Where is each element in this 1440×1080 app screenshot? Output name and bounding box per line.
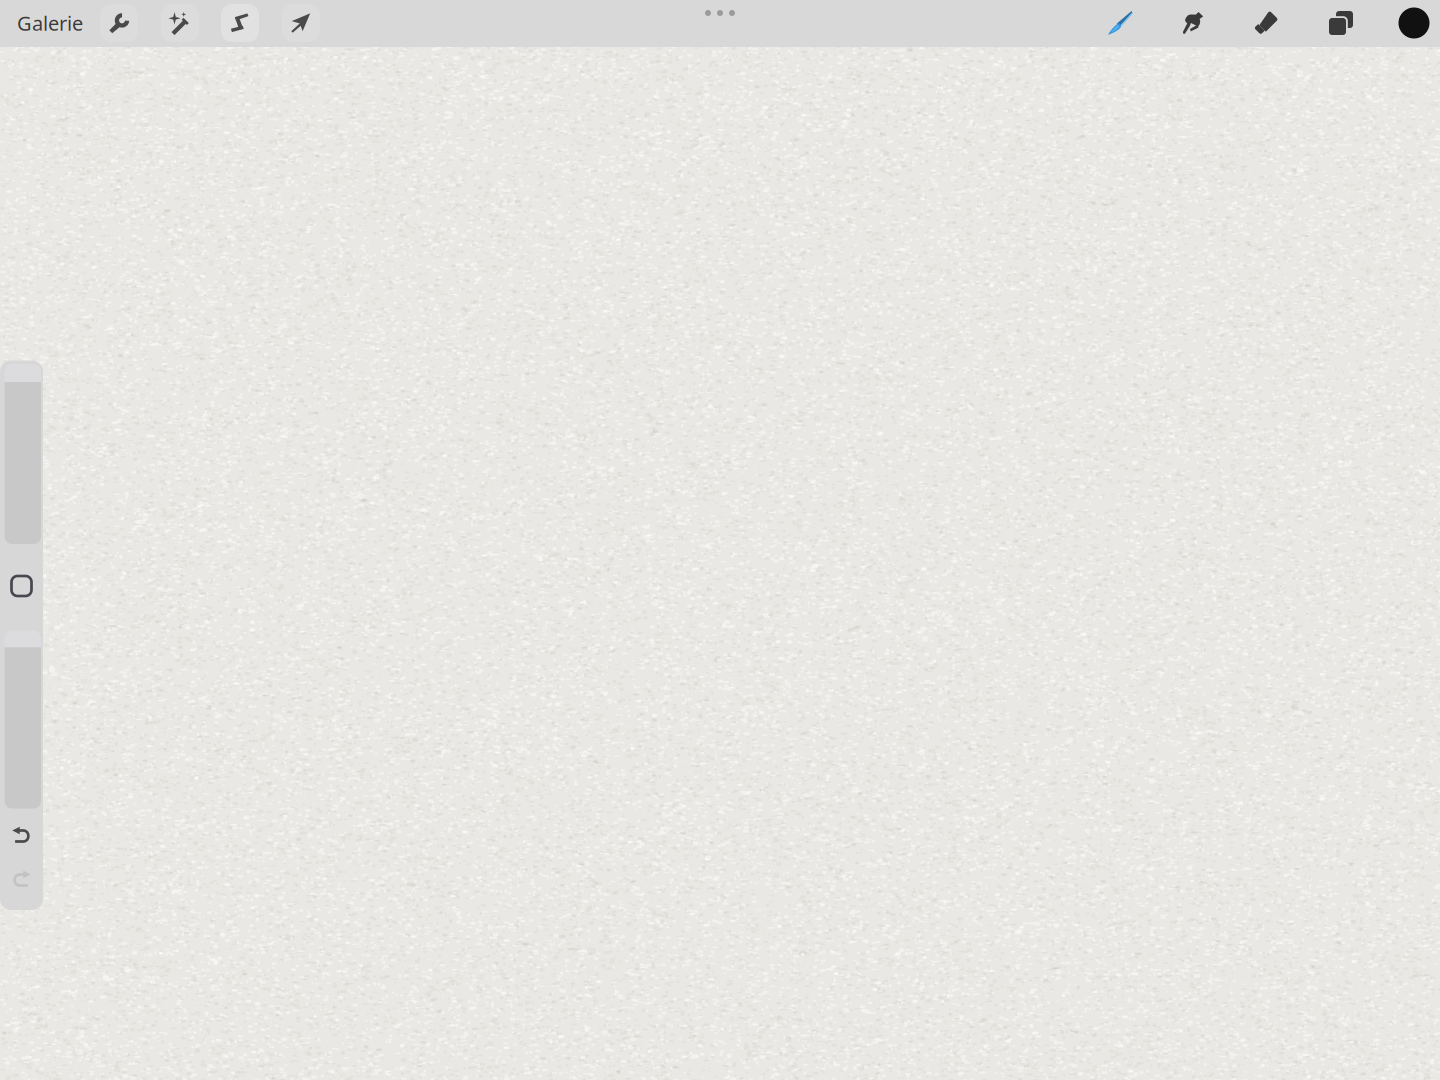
button[interactable]: Erase [1242,1,1290,45]
button[interactable]: Adjustments [156,1,204,45]
button[interactable]: Undo [1,818,41,852]
button[interactable]: Transform [277,1,325,45]
button[interactable]: Galerie [5,1,95,45]
button[interactable]: Smudge [1169,1,1217,45]
button[interactable]: Selection [216,1,264,45]
button[interactable]: Color [1392,1,1436,45]
button[interactable]: Layers [1317,1,1365,45]
button[interactable]: Redo [1,862,41,896]
staticText: Galerie [17,10,83,36]
button[interactable]: Paint [1096,1,1144,45]
button[interactable]: Actions [95,1,143,45]
button[interactable]: Modify brush [1,566,41,606]
